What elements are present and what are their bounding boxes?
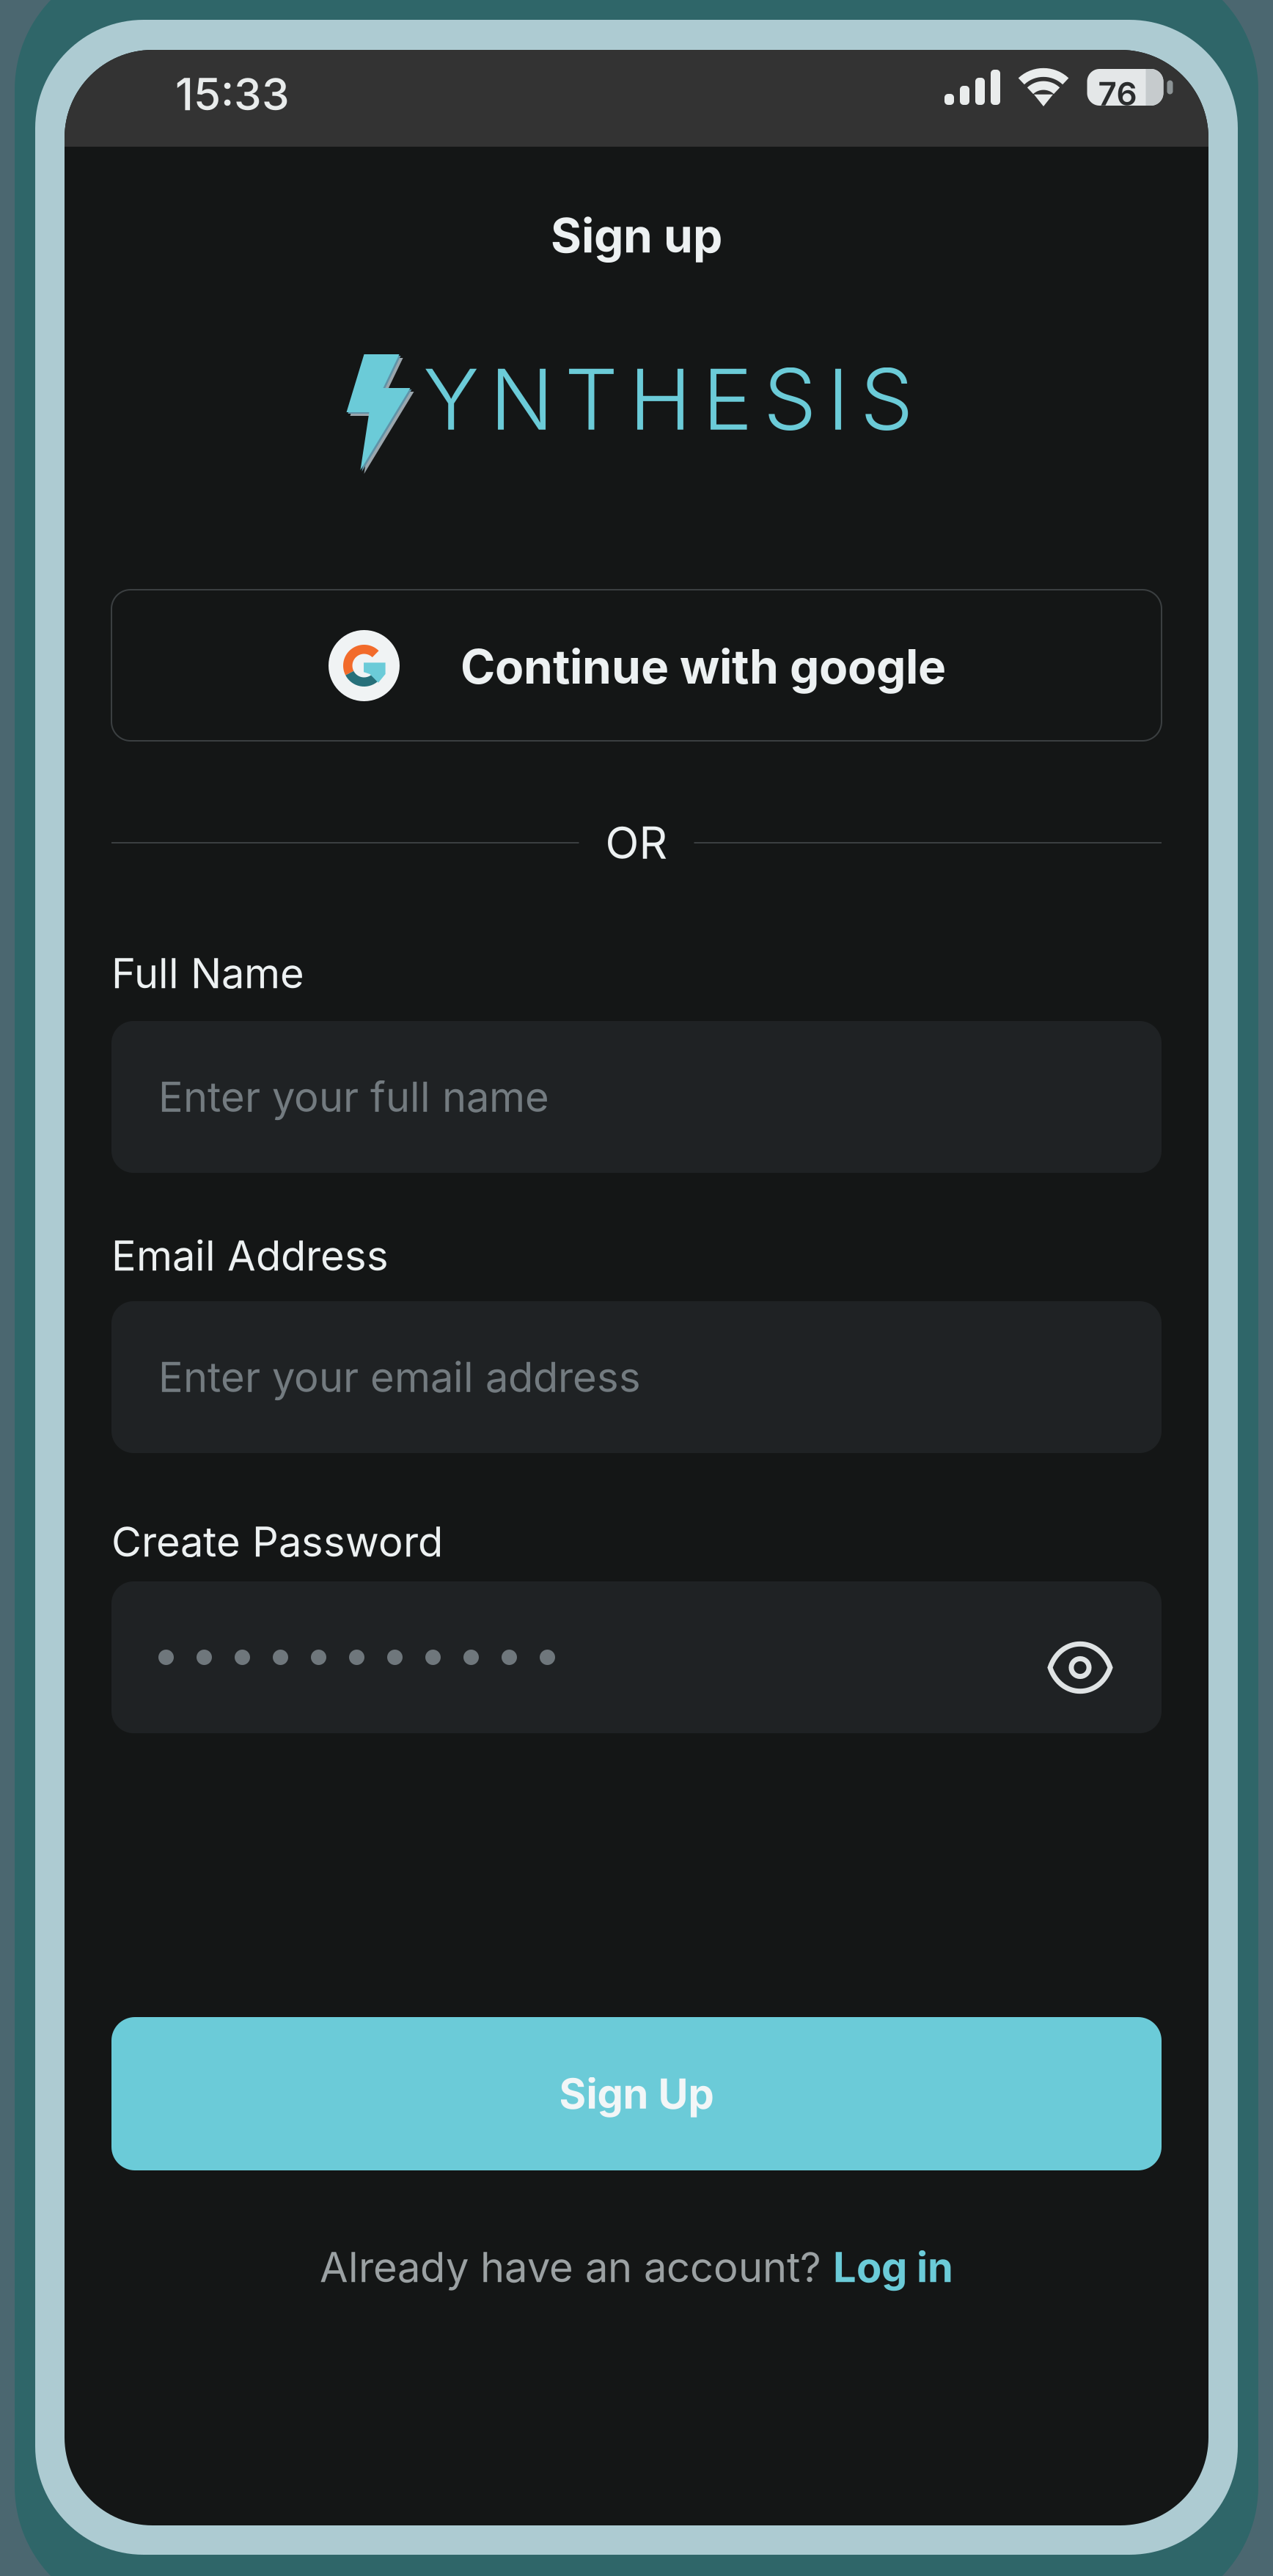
staticText: YNTHESIS	[423, 348, 913, 450]
staticText: Enter your email address	[158, 1352, 641, 1402]
staticText: Log in	[833, 2242, 953, 2292]
staticText: Continue with google	[461, 638, 946, 695]
button[interactable]: Enter your email address	[111, 1301, 1162, 1453]
button[interactable]: Create password	[111, 1581, 1162, 1733]
staticText: 76	[1098, 74, 1137, 113]
staticText: Enter your full name	[158, 1072, 549, 1122]
staticText: Already have an account?	[320, 2242, 833, 2292]
staticText: Create Password	[111, 1517, 443, 1567]
button[interactable]: Show password	[1050, 1644, 1110, 1691]
staticText: OR	[605, 816, 668, 869]
staticText: 15:33	[175, 67, 290, 121]
button[interactable]: Already have an account?	[65, 2242, 1208, 2293]
button[interactable]: Enter your full name	[111, 1021, 1162, 1173]
staticText: Sign up	[551, 207, 722, 264]
staticText: Full Name	[111, 948, 304, 998]
staticText: Email Address	[111, 1231, 389, 1281]
staticText: Sign Up	[559, 2069, 714, 2119]
button[interactable]: Continue with google	[111, 590, 1162, 741]
button[interactable]: Sign Up	[111, 2017, 1162, 2170]
